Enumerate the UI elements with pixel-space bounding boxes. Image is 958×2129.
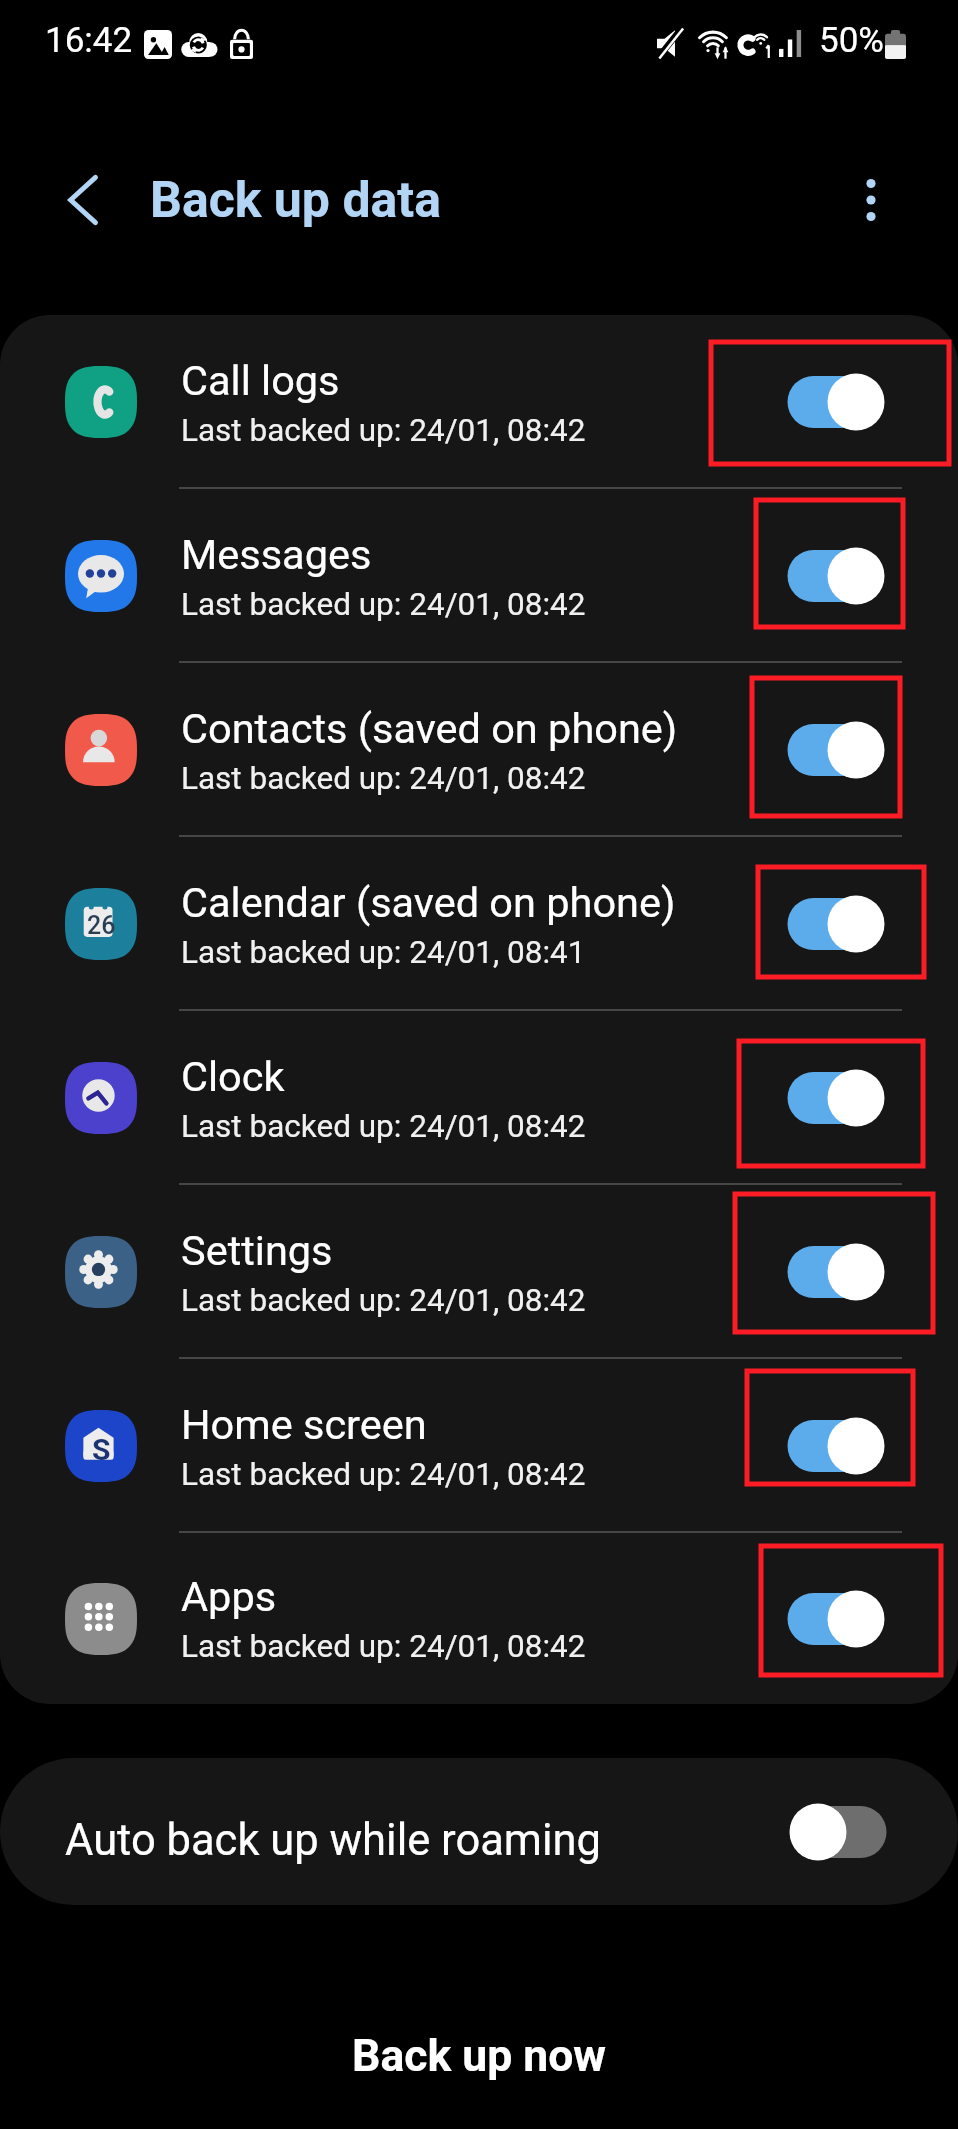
button[interactable]: Contacts (saved on phone) [0,663,958,837]
staticText: Messages [181,530,372,579]
staticText: Call logs [181,356,340,405]
button[interactable]: Auto back up while roaming [0,1758,958,1905]
button[interactable]: Messages switch [711,489,958,663]
button[interactable]: Clock [0,1011,958,1185]
button[interactable]: Back [53,169,115,231]
button[interactable]: Auto back up while roaming [779,1777,899,1887]
button[interactable]: Clock switch [711,1011,958,1185]
button[interactable]: Apps switch [711,1533,958,1704]
staticText: 16:42 [45,20,133,61]
staticText: Back up data [150,171,441,230]
staticText: Apps [181,1572,277,1621]
staticText: S [92,1432,111,1467]
staticText: Contacts (saved on phone) [181,704,678,753]
staticText: Last backed up: 24/01, 08:42 [181,1282,586,1319]
staticText: Auto back up while roaming [65,1815,602,1866]
button[interactable]: Settings switch [711,1185,958,1359]
button[interactable]: Call logs [0,315,958,489]
button[interactable]: Call logs switch [711,315,958,489]
button[interactable]: 26 [0,837,958,1011]
button[interactable]: Back up now [0,1992,958,2120]
staticText: Calendar (saved on phone) [181,878,676,927]
staticText: Last backed up: 24/01, 08:42 [181,586,586,623]
staticText: 50% [819,20,884,61]
staticText: Back up now [352,2030,606,2082]
staticText: Last backed up: 24/01, 08:41 [181,934,586,971]
button[interactable]: Messages [0,489,958,663]
button[interactable]: Apps [0,1533,958,1704]
button[interactable]: More options [841,170,901,230]
staticText: Clock [181,1052,285,1101]
staticText: Last backed up: 24/01, 08:42 [181,760,586,797]
staticText: Home screen [181,1400,427,1449]
staticText: Last backed up: 24/01, 08:42 [181,1456,586,1493]
button[interactable]: Contacts (saved on phone) switch [711,663,958,837]
staticText: Last backed up: 24/01, 08:42 [181,1108,586,1145]
staticText: 26 [87,911,116,940]
staticText: Last backed up: 24/01, 08:42 [181,1628,586,1665]
staticText: Last backed up: 24/01, 08:42 [181,412,586,449]
button[interactable]: S [0,1359,958,1533]
button[interactable]: Calendar (saved on phone) switch [711,837,958,1011]
button[interactable]: Home screen switch [711,1359,958,1533]
button[interactable]: Settings [0,1185,958,1359]
staticText: Settings [181,1226,333,1275]
